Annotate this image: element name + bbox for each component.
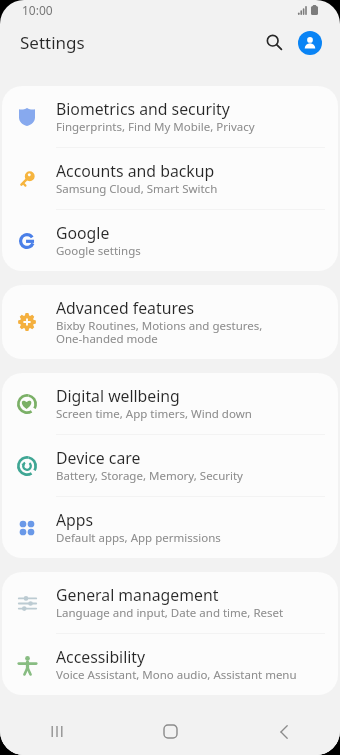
button[interactable]: Apps	[2, 497, 338, 558]
button[interactable]: Back	[227, 708, 340, 755]
button[interactable]: Accounts and backup	[2, 148, 338, 209]
staticText: 10:00	[22, 2, 53, 18]
button[interactable]: Recents	[0, 708, 114, 755]
staticText: Screen time, App timers, Wind down	[56, 406, 252, 422]
button[interactable]: Home	[114, 708, 227, 755]
staticText: Settings	[20, 31, 85, 54]
staticText: Default apps, App permissions	[56, 530, 221, 546]
staticText: Advanced features	[56, 297, 195, 319]
button[interactable]: Advanced features	[2, 285, 338, 359]
staticText: General management	[56, 584, 219, 606]
staticText: Apps	[56, 509, 94, 531]
button[interactable]: Account	[298, 31, 322, 55]
button[interactable]: Google	[2, 210, 338, 271]
staticText: Software update	[56, 721, 179, 743]
staticText: Samsung Cloud, Smart Switch	[56, 181, 218, 197]
staticText: Voice Assistant, Mono audio, Assistant m…	[56, 667, 297, 683]
staticText: Biometrics and security	[56, 98, 230, 120]
button[interactable]: General management	[2, 572, 338, 633]
staticText: Accounts and backup	[56, 160, 215, 182]
button[interactable]: Search	[258, 26, 291, 59]
staticText: Language and input, Date and time, Reset	[56, 605, 284, 621]
button[interactable]: Digital wellbeing	[2, 373, 338, 434]
staticText: Digital wellbeing	[56, 385, 180, 407]
staticText: Battery, Storage, Memory, Security	[56, 468, 243, 484]
staticText: Google settings	[56, 243, 141, 259]
staticText: Accessibility	[56, 646, 146, 668]
button[interactable]: Biometrics and security	[2, 86, 338, 147]
staticText: Bixby Routines, Motions and gestures, On…	[56, 318, 263, 347]
button[interactable]: Device care	[2, 435, 338, 496]
button[interactable]: Software update	[2, 709, 338, 755]
button[interactable]: Accessibility	[2, 634, 338, 695]
staticText: Device care	[56, 447, 141, 469]
staticText: Fingerprints, Find My Mobile, Privacy	[56, 119, 255, 135]
staticText: Google	[56, 222, 110, 244]
